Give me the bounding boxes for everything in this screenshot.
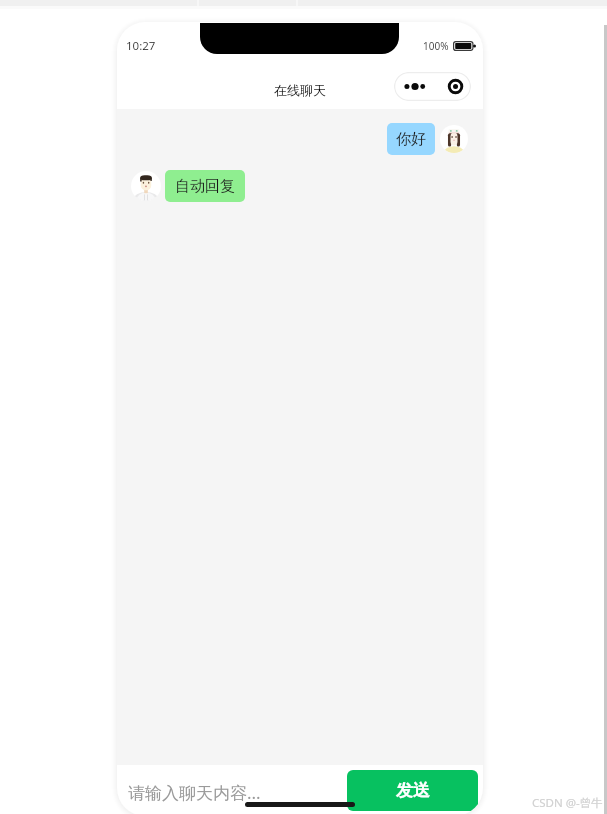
button[interactable]: Bot avatar [131,171,161,201]
staticText: 请输入聊天内容... [128,781,261,804]
staticText: 发送 [396,780,430,801]
button[interactable]: My avatar [440,125,468,153]
button[interactable]: 你好 [387,123,435,155]
staticText: 10:27 [126,38,156,54]
button[interactable]: More options and close [394,72,471,101]
button[interactable]: 请输入聊天内容... [128,775,347,809]
button[interactable]: 发送 [347,770,478,811]
staticText: 你好 [396,130,426,149]
staticText: 自动回复 [175,177,235,196]
staticText: 100% [423,39,449,53]
button[interactable]: 自动回复 [165,170,245,202]
staticText: CSDN @-曾牛 [532,795,603,811]
staticText: 在线聊天 [274,82,326,98]
